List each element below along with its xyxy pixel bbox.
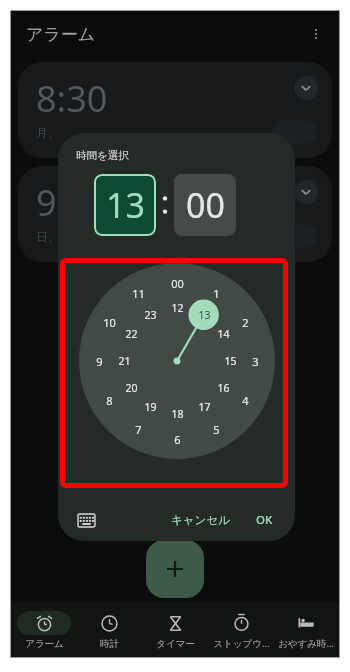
staticText: 11: [132, 286, 145, 301]
button[interactable]: アラーム: [12, 611, 76, 650]
staticText: 8:30: [36, 74, 108, 123]
staticText: 14: [217, 327, 230, 341]
staticText: 22: [125, 327, 138, 341]
staticText: ストップウ…: [213, 637, 270, 650]
button[interactable]: おやすみ時…: [274, 610, 338, 650]
button[interactable]: [272, 120, 316, 144]
staticText: OK: [256, 512, 273, 528]
staticText: 3: [252, 354, 259, 369]
button[interactable]: ストップウ…: [209, 610, 273, 650]
staticText: アラーム: [26, 24, 96, 45]
staticText: 5: [213, 422, 220, 437]
button[interactable]: OK: [250, 508, 279, 532]
staticText: 月、: [36, 125, 60, 140]
button[interactable]: Add alarm: [146, 540, 204, 598]
staticText: 21: [118, 354, 131, 368]
staticText: 16: [217, 381, 230, 395]
button[interactable]: 9: [18, 166, 332, 262]
staticText: 12: [171, 301, 184, 315]
button[interactable]: [272, 224, 316, 248]
staticText: 7: [135, 422, 142, 437]
button[interactable]: 00: [174, 174, 236, 236]
staticText: 13: [198, 308, 211, 322]
staticText: 1: [213, 286, 220, 301]
staticText: 9: [96, 354, 103, 369]
staticText: 15: [224, 354, 237, 368]
button[interactable]: Switch to text input: [72, 506, 100, 534]
staticText: 6: [174, 432, 181, 447]
staticText: 日、: [36, 229, 60, 244]
staticText: 19: [144, 400, 157, 414]
button[interactable]: タイマー: [143, 611, 207, 650]
staticText: タイマー: [156, 638, 195, 650]
staticText: 23: [144, 308, 157, 322]
staticText: おやすみ時…: [278, 637, 334, 650]
staticText: 17: [198, 400, 211, 414]
staticText: アラーム: [25, 638, 64, 650]
button[interactable]: More options: [302, 20, 330, 48]
staticText: 2: [242, 315, 249, 330]
button[interactable]: 13: [94, 174, 156, 236]
staticText: 8: [106, 393, 113, 408]
staticText: 時計: [100, 638, 119, 650]
staticText: 4: [242, 393, 249, 408]
staticText: 20: [125, 381, 138, 395]
staticText: 10: [103, 315, 116, 330]
staticText: 00: [186, 182, 225, 228]
staticText: 18: [171, 407, 184, 421]
staticText: 時間を選択: [76, 149, 129, 162]
button[interactable]: Expand: [294, 76, 318, 100]
staticText: 9: [36, 178, 57, 227]
button[interactable]: 8:30: [18, 62, 332, 158]
staticText: 13: [106, 182, 145, 228]
staticText: キャンセル: [171, 513, 230, 527]
button[interactable]: キャンセル: [165, 509, 236, 531]
button[interactable]: 時計: [77, 611, 141, 650]
staticText: 00: [171, 276, 184, 291]
button[interactable]: Expand: [294, 180, 318, 204]
